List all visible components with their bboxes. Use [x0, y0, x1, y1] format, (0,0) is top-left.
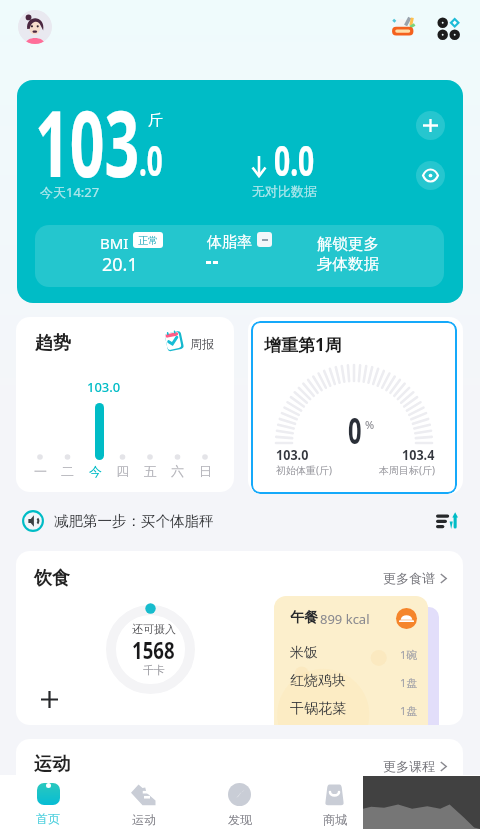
button[interactable]: 运动 [119, 776, 167, 829]
staticText: 更多课程 [383, 758, 435, 774]
button[interactable]: 发现 [215, 776, 263, 829]
button[interactable]: 103 [17, 80, 463, 303]
staticText: 六 [171, 463, 184, 479]
staticText: 千卡 [143, 663, 165, 677]
button[interactable]: 更多食谱 [383, 570, 448, 586]
button[interactable]: BMI [35, 225, 444, 287]
other: Ranking [436, 510, 458, 532]
staticText: 0.0 [274, 131, 314, 188]
staticText: 商城 [323, 812, 347, 827]
staticText: 周报 [190, 336, 214, 351]
button[interactable]: 饮食 [16, 551, 463, 725]
staticText: BMI [100, 233, 129, 253]
staticText: 趋势 [35, 332, 71, 355]
staticText: 1568 [132, 634, 175, 665]
staticText: 1碗 [400, 647, 418, 662]
staticText: 本周目标(斤) [379, 463, 435, 477]
staticText: 减肥第一步：买个体脂秤 [54, 512, 214, 530]
staticText: 今天14:27 [40, 183, 100, 201]
button[interactable]: Shopping basket [390, 13, 416, 39]
staticText: 103 [35, 80, 139, 204]
staticText: 0 [348, 406, 362, 455]
staticText: 增重第1周 [264, 333, 342, 356]
button[interactable]: Add weight record [416, 111, 445, 140]
staticText: 103.0 [87, 378, 121, 396]
staticText: 干锅花菜 [290, 700, 346, 718]
staticText: 四 [116, 463, 129, 479]
staticText: 饮食 [34, 567, 70, 590]
staticText: 899 kcal [320, 610, 370, 628]
staticText: 日 [199, 463, 212, 479]
button[interactable]: 增重第1周 [251, 321, 457, 494]
staticText: 运动 [132, 812, 156, 827]
staticText: 首页 [36, 811, 60, 826]
staticText: 更多食谱 [383, 570, 435, 586]
button[interactable]: 趋势 [16, 317, 234, 492]
button[interactable]: 商城 [310, 776, 358, 829]
staticText: 初始体重(斤) [276, 463, 332, 477]
staticText: 发现 [228, 812, 252, 827]
staticText: 运动 [34, 753, 70, 776]
staticText: 一 [34, 463, 47, 479]
staticText: .0 [139, 131, 163, 188]
staticText: 红烧鸡块 [290, 672, 346, 690]
staticText: 1盘 [400, 675, 418, 690]
button[interactable]: 运动 [16, 739, 463, 779]
staticText: 103.0 [276, 445, 308, 464]
button[interactable]: 更多课程 [383, 758, 448, 774]
staticText: 午餐 [290, 609, 318, 627]
button[interactable]: Audio tip [22, 508, 458, 534]
staticText: 五 [144, 463, 157, 479]
button[interactable]: Menu [431, 11, 461, 41]
button[interactable]: 午餐 [274, 596, 428, 725]
staticText: 1盘 [400, 703, 418, 718]
staticText: 解锁更多 [317, 234, 379, 254]
staticText: 二 [61, 463, 74, 479]
button[interactable]: Profile [18, 10, 52, 44]
staticText: 今 [89, 463, 102, 479]
staticText: 身体数据 [317, 254, 379, 274]
button[interactable]: Toggle visibility [416, 161, 445, 190]
staticText: 斤 [148, 111, 163, 130]
staticText: 体脂率 [207, 233, 252, 252]
other: Audio tip [22, 510, 44, 532]
staticText: 20.1 [102, 252, 138, 277]
staticText: 103.4 [402, 445, 434, 464]
staticText: 还可摄入 [132, 622, 176, 636]
staticText: % [365, 417, 375, 432]
staticText: 无对比数据 [252, 183, 317, 199]
staticText: 正常 [138, 234, 158, 247]
button[interactable]: Add food [41, 691, 58, 708]
button[interactable]: 首页 [24, 776, 72, 829]
staticText: 米饭 [290, 644, 318, 662]
